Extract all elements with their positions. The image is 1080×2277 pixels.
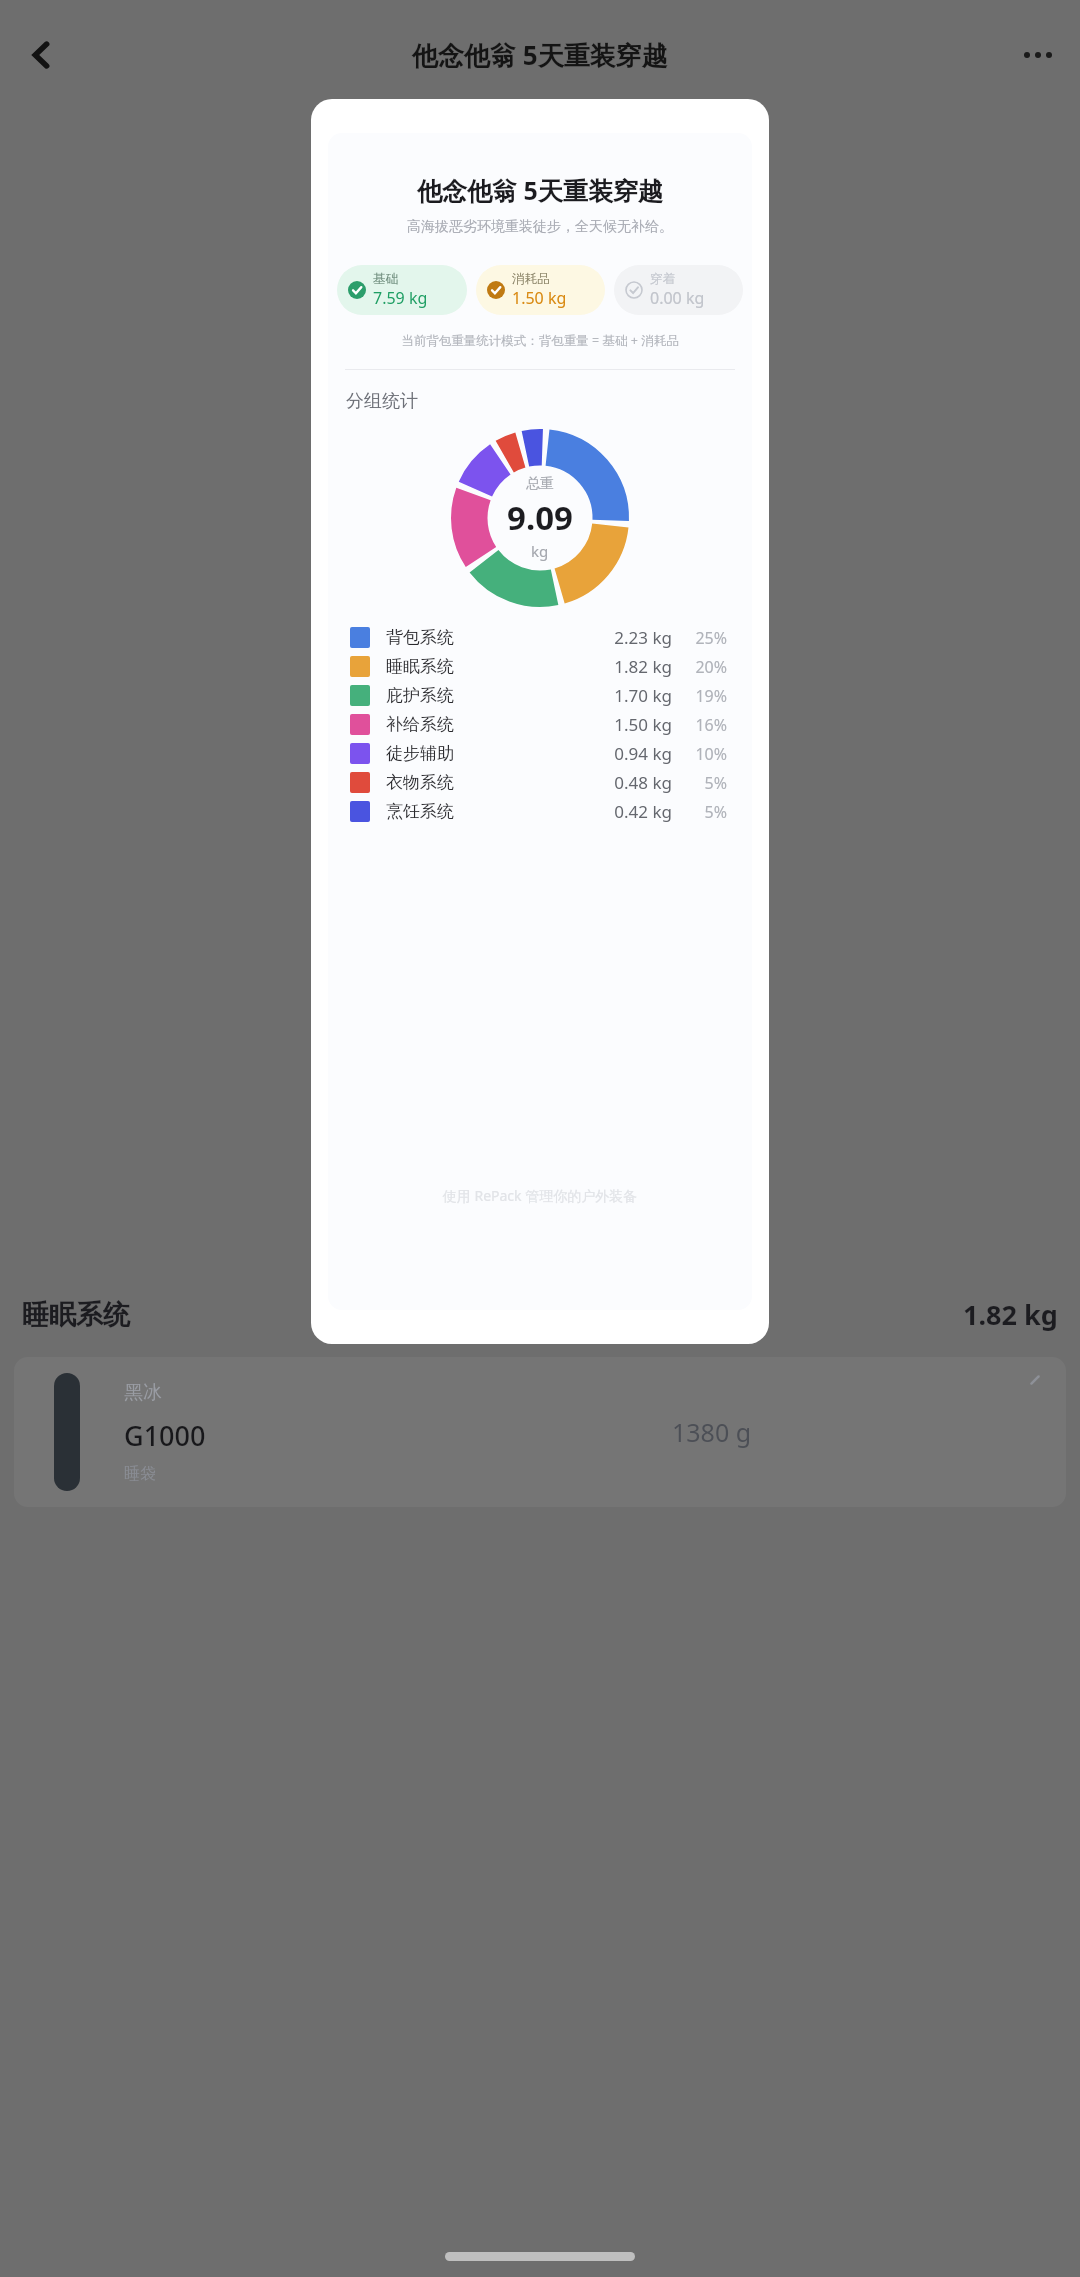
- button[interactable]: Link: [1018, 1363, 1052, 1397]
- button[interactable]: More options: [1010, 27, 1066, 83]
- staticText: 1.50 kg: [512, 287, 567, 309]
- staticText: 衣物系统: [386, 772, 454, 793]
- staticText: 5%: [685, 801, 727, 823]
- staticText: 1.82 kg: [963, 1296, 1058, 1333]
- button[interactable]: 消耗品: [476, 265, 605, 315]
- staticText: 烹饪系统: [386, 801, 454, 822]
- staticText: 16%: [685, 714, 727, 736]
- button[interactable]: 衣物系统: [328, 768, 752, 797]
- button[interactable]: 烹饪系统: [328, 797, 752, 826]
- staticText: 20%: [685, 656, 727, 678]
- staticText: 背包系统: [386, 627, 454, 648]
- button[interactable]: 睡眠系统: [328, 652, 752, 681]
- staticText: 黑冰: [124, 1381, 162, 1405]
- staticText: 总重: [526, 475, 554, 493]
- button[interactable]: 他念他翁 5天重装穿越: [311, 99, 769, 1344]
- staticText: kg: [531, 541, 549, 561]
- staticText: 0.94 kg: [594, 742, 672, 765]
- staticText: 1.50 kg: [594, 713, 672, 736]
- staticText: 0.42 kg: [594, 800, 672, 823]
- staticText: 19%: [685, 685, 727, 707]
- staticText: 分组统计: [346, 390, 418, 413]
- staticText: 基础: [373, 271, 398, 287]
- staticText: 10%: [685, 743, 727, 765]
- staticText: 庇护系统: [386, 685, 454, 706]
- staticText: 高海拔恶劣环境重装徒步，全天候无补给。: [328, 218, 752, 236]
- staticText: 穿着: [650, 271, 675, 287]
- staticText: 睡眠系统: [22, 1298, 130, 1332]
- staticText: 使用 RePack 管理你的户外装备: [328, 1186, 752, 1205]
- staticText: 补给系统: [386, 714, 454, 735]
- staticText: 1380 g: [672, 1415, 752, 1449]
- staticText: 睡袋: [124, 1464, 156, 1484]
- staticText: 7.59 kg: [373, 287, 428, 309]
- button[interactable]: 徒步辅助: [328, 739, 752, 768]
- button[interactable]: 补给系统: [328, 710, 752, 739]
- button[interactable]: 穿着: [614, 265, 743, 315]
- staticText: G1000: [124, 1417, 206, 1454]
- staticText: 当前背包重量统计模式：背包重量 = 基础 + 消耗品: [328, 332, 752, 349]
- button[interactable]: 背包系统: [328, 623, 752, 652]
- staticText: 0.00 kg: [650, 287, 705, 309]
- button[interactable]: 基础: [337, 265, 467, 315]
- button[interactable]: 庇护系统: [328, 681, 752, 710]
- staticText: 9.09: [507, 495, 573, 540]
- button[interactable]: Back: [14, 27, 70, 83]
- staticText: 1.82 kg: [594, 655, 672, 678]
- staticText: 睡眠系统: [386, 656, 454, 677]
- staticText: 他念他翁 5天重装穿越: [328, 173, 752, 207]
- staticText: 25%: [685, 627, 727, 649]
- staticText: 0.48 kg: [594, 771, 672, 794]
- staticText: 徒步辅助: [386, 743, 454, 764]
- staticText: 消耗品: [512, 271, 550, 287]
- staticText: 他念他翁 5天重装穿越: [412, 37, 668, 73]
- staticText: 5%: [685, 772, 727, 794]
- staticText: 2.23 kg: [594, 626, 672, 649]
- staticText: 1.70 kg: [594, 684, 672, 707]
